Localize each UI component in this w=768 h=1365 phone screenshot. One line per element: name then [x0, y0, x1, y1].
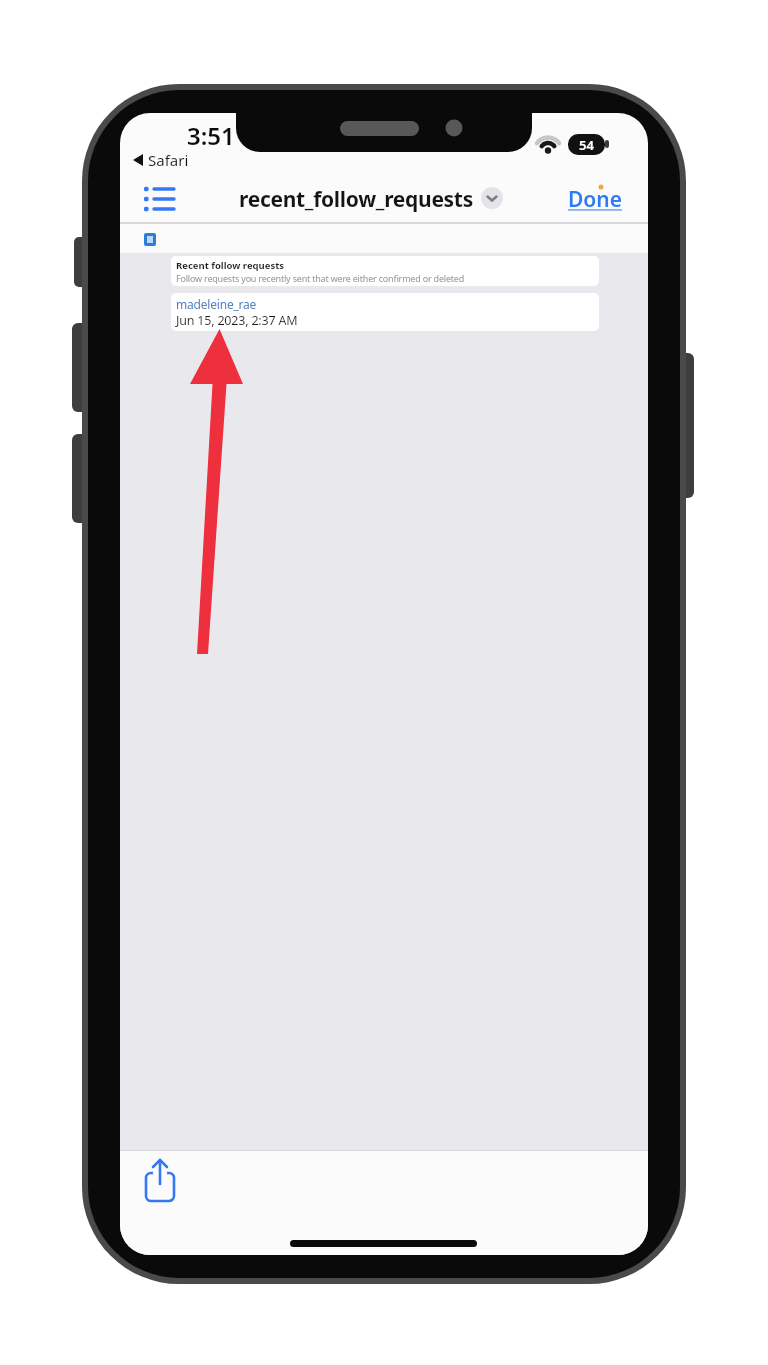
button[interactable] [140, 182, 180, 216]
button[interactable]: Recent follow requests [171, 256, 599, 286]
staticText: Follow requests you recently sent that w… [176, 272, 465, 284]
staticText: 3:51 [187, 119, 235, 149]
button[interactable]: Done [560, 183, 630, 215]
staticText: Safari [148, 150, 189, 170]
staticText: recent_follow_requests [239, 185, 473, 213]
staticText: 54 [579, 136, 594, 154]
button[interactable]: madeleine_rae [171, 293, 599, 331]
staticText: madeleine_rae [176, 296, 257, 312]
button[interactable] [142, 1157, 182, 1209]
staticText: Done [568, 185, 623, 214]
staticText: Recent follow requests [176, 259, 285, 272]
button[interactable] [481, 187, 503, 209]
button[interactable]: Safari [133, 150, 189, 170]
staticText: Jun 15, 2023, 2:37 AM [176, 312, 298, 329]
